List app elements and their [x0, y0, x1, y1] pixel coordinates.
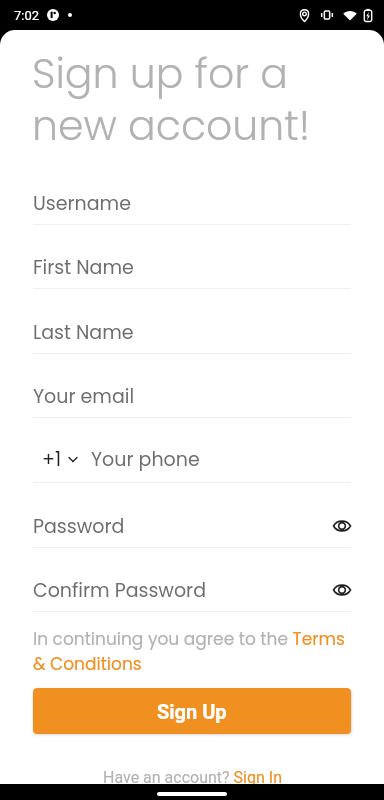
button[interactable]: +1: [42, 446, 77, 473]
button[interactable]: Your email: [0, 369, 384, 418]
button[interactable]: Show password: [326, 574, 358, 606]
staticText: Your phone: [91, 446, 200, 473]
button[interactable]: Sign Up: [33, 688, 351, 734]
staticText: +1: [42, 446, 62, 473]
button[interactable]: Username: [0, 176, 384, 225]
staticText: First Name: [33, 254, 134, 281]
button[interactable]: Password: [0, 499, 384, 548]
staticText: Sign Up: [157, 700, 227, 723]
staticText: Last Name: [33, 319, 134, 346]
button[interactable]: +1: [0, 434, 384, 483]
staticText: 7:02: [14, 8, 40, 23]
button[interactable]: Confirm Password: [0, 563, 384, 612]
button[interactable]: In continuing you agree to the Terms & C…: [33, 627, 351, 676]
button[interactable]: Have an account? Sign In: [103, 768, 282, 787]
staticText: Sign up for a new account!: [32, 45, 311, 154]
staticText: Your email: [33, 383, 135, 410]
staticText: Password: [33, 513, 125, 540]
button[interactable]: First Name: [0, 240, 384, 289]
staticText: Username: [33, 190, 131, 217]
button[interactable]: Last Name: [0, 305, 384, 354]
button[interactable]: Show password: [326, 510, 358, 542]
staticText: Confirm Password: [33, 577, 206, 604]
